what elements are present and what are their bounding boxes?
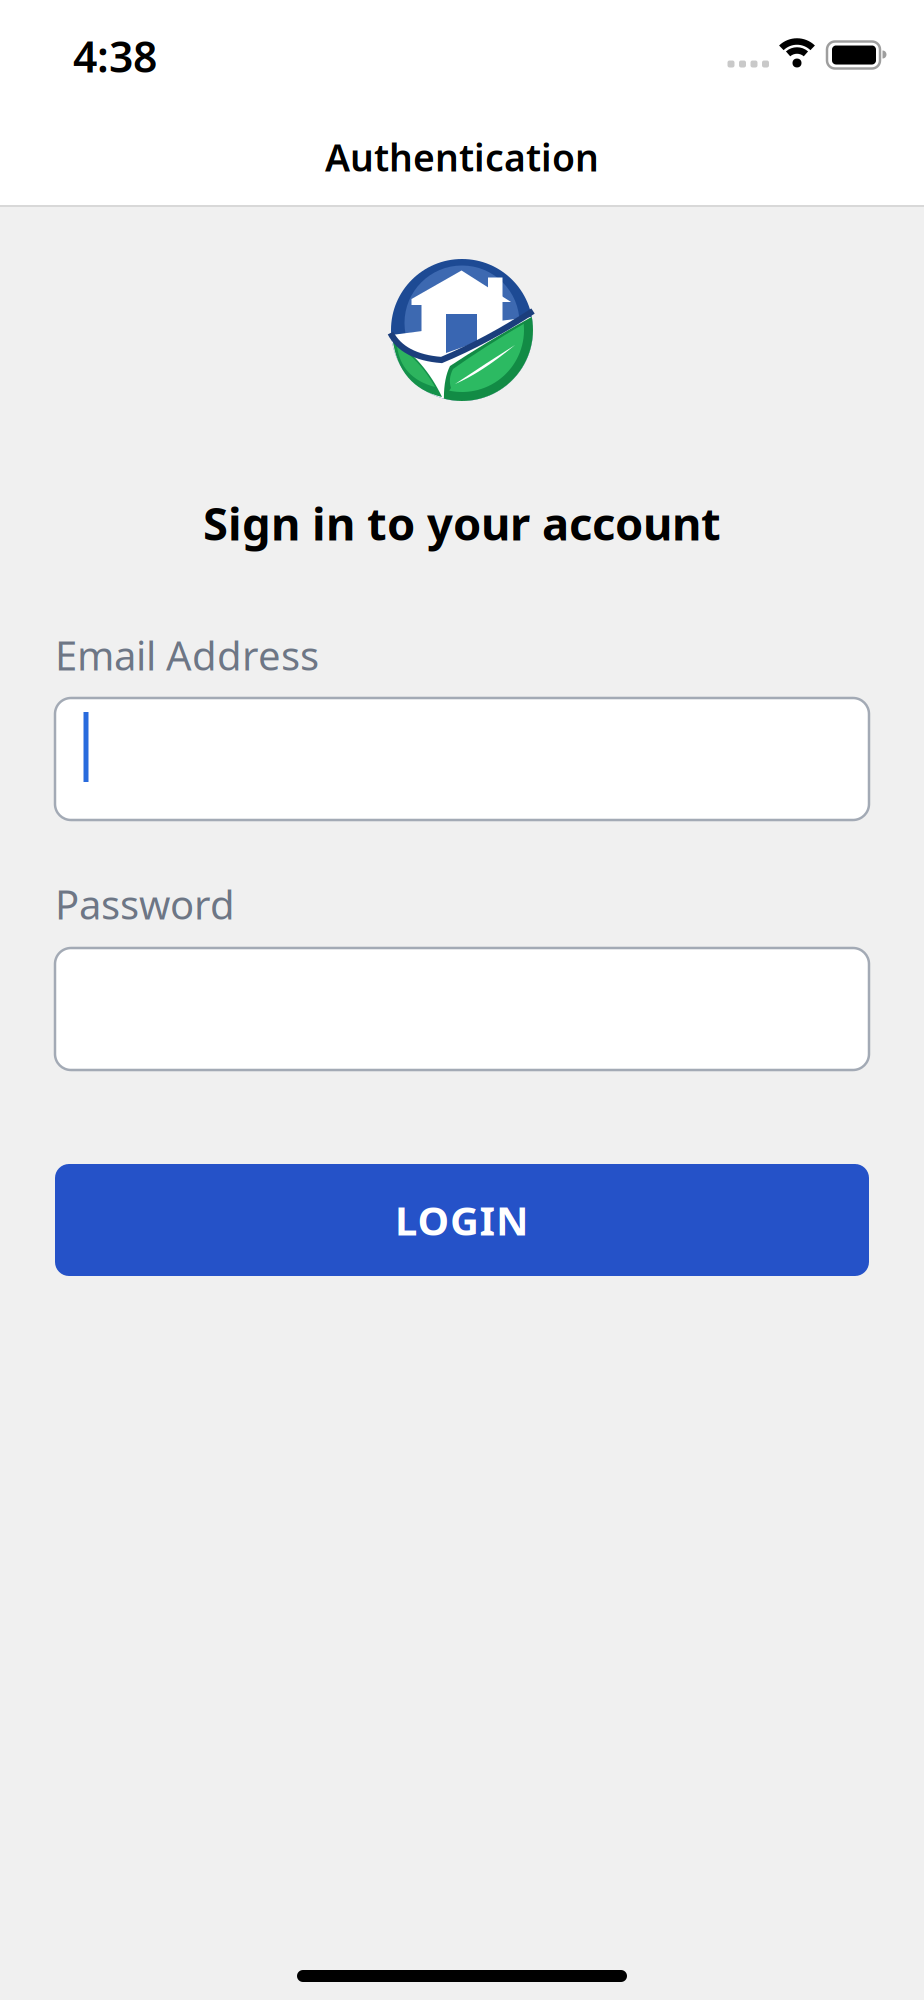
button[interactable] (55, 698, 869, 820)
staticText: 4:38 (73, 28, 157, 84)
staticText: LOGIN (395, 1193, 529, 1246)
staticText: Sign in to your account (203, 493, 721, 553)
button[interactable] (55, 948, 869, 1070)
staticText: Password (55, 877, 235, 930)
button[interactable]: LOGIN (55, 1164, 869, 1276)
staticText: Email Address (55, 628, 319, 681)
staticText: Authentication (325, 132, 599, 182)
